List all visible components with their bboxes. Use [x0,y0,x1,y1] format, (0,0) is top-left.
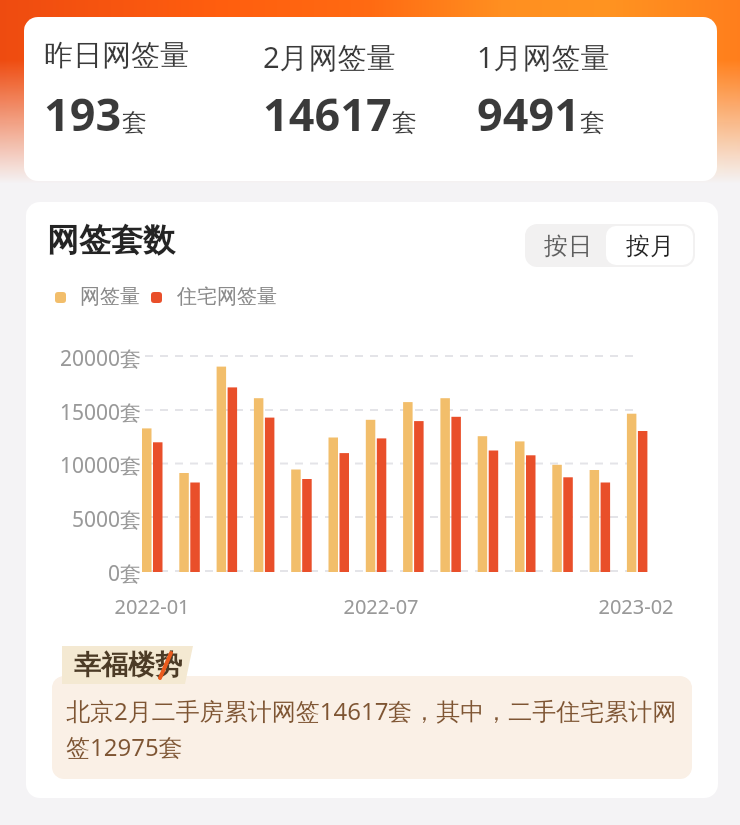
staticText: 1月网签量 [477,37,610,77]
staticText: 套 [580,107,605,138]
staticText: 套 [392,107,417,138]
staticText: 2023-02 [596,593,676,620]
staticText: 5000套 [48,505,141,534]
button[interactable]: 按月 [606,226,693,265]
staticText: 2月网签量 [263,37,396,77]
staticText: 套 [122,107,147,138]
staticText: 住宅网签量 [177,284,277,309]
staticText: 北京2月二手房累计网签14617套，其中，二手住宅累计网 签12975套 [66,694,706,764]
staticText: 网签量 [80,284,140,309]
staticText: 2022-01 [112,593,192,620]
staticText: 2022-07 [341,593,421,620]
staticText: 按月 [626,231,674,261]
staticText: 按日 [544,231,592,261]
staticText: 14617 [263,83,392,144]
staticText: 193 [44,83,122,144]
staticText: 网签套数 [47,220,175,260]
button[interactable]: 按日 [525,224,610,267]
staticText: 9491 [477,83,580,144]
staticText: 10000套 [48,451,141,480]
staticText: 20000套 [48,344,141,373]
staticText: 0套 [48,559,141,588]
staticText: 15000套 [48,398,141,427]
staticText: 幸福楼势 [74,648,182,682]
staticText: 昨日网签量 [44,37,189,74]
